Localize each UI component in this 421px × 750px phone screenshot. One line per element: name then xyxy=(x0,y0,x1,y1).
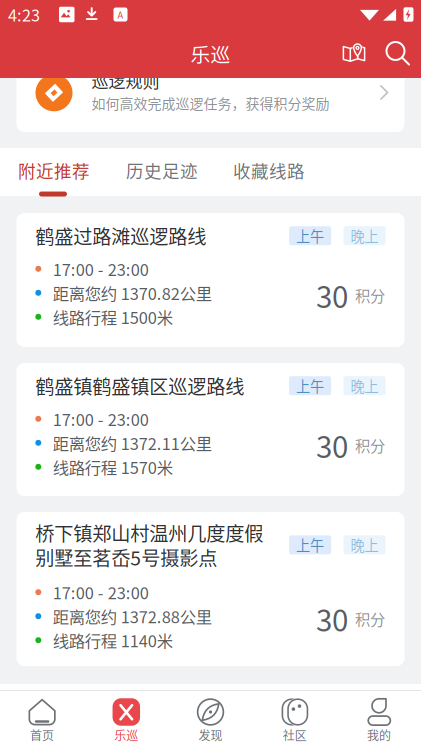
staticText: 4:23 xyxy=(8,3,40,26)
staticText: 巡逻规则 xyxy=(91,68,159,93)
button[interactable]: 收藏线路 xyxy=(233,157,305,183)
staticText: 晚上 xyxy=(350,375,378,396)
staticText: 线路行程 1140米 xyxy=(53,628,173,652)
button[interactable]: 鹤盛镇鹤盛镇区巡逻路线 xyxy=(16,363,404,496)
staticText: 距离您约 1372.11公里 xyxy=(53,431,212,455)
staticText: 距离您约 1370.82公里 xyxy=(53,281,212,305)
staticText: 上午 xyxy=(296,535,324,555)
staticText: 我的 xyxy=(367,726,391,744)
staticText: 线路行程 1500米 xyxy=(53,305,173,329)
staticText: 社区 xyxy=(283,726,307,744)
staticText: 17:00 - 23:00 xyxy=(53,257,149,281)
staticText: 桥下镇郑山村温州几度度假 xyxy=(35,519,263,547)
staticText: 30 xyxy=(316,424,348,466)
button[interactable]: 历史足迹 xyxy=(126,157,198,183)
staticText: A xyxy=(117,8,123,21)
button[interactable]: 发现 xyxy=(168,690,253,750)
staticText: 附近推荐 xyxy=(18,157,90,183)
staticText: 晚上 xyxy=(350,225,378,246)
staticText: 距离您约 1372.88公里 xyxy=(53,604,212,628)
staticText: 晚上 xyxy=(350,535,378,555)
staticText: 乐巡 xyxy=(114,726,138,744)
staticText: 乐巡 xyxy=(190,39,230,68)
staticText: 别墅至茗岙5号摄影点 xyxy=(35,543,217,571)
staticText: 鹤盛镇鹤盛镇区巡逻路线 xyxy=(35,372,244,400)
staticText: 发现 xyxy=(198,726,222,744)
staticText: 30 xyxy=(316,597,348,640)
staticText: 收藏线路 xyxy=(233,157,305,183)
staticText: 鹤盛过路滩巡逻路线 xyxy=(35,222,206,250)
button[interactable]: 首页 xyxy=(0,690,84,750)
button[interactable]: 巡逻规则 xyxy=(16,46,404,132)
button[interactable]: 附近推荐 xyxy=(18,157,90,183)
staticText: 首页 xyxy=(30,726,54,744)
staticText: 积分 xyxy=(355,434,385,456)
staticText: 历史足迹 xyxy=(126,157,198,183)
staticText: 上午 xyxy=(296,225,324,246)
staticText: 线路行程 1570米 xyxy=(53,455,173,479)
staticText: 17:00 - 23:00 xyxy=(53,580,149,604)
staticText: 如何高效完成巡逻任务，获得积分奖励 xyxy=(91,93,329,113)
button[interactable]: 社区 xyxy=(253,690,337,750)
staticText: 30 xyxy=(316,274,348,316)
button[interactable]: 桥下镇郑山村温州几度度假 xyxy=(16,512,404,666)
button[interactable]: 地图 xyxy=(333,29,375,78)
button[interactable]: 搜索 xyxy=(377,29,419,78)
button[interactable]: 乐巡 xyxy=(84,690,168,750)
staticText: 上午 xyxy=(296,375,324,396)
button[interactable]: 鹤盛过路滩巡逻路线 xyxy=(16,213,404,347)
staticText: 17:00 - 23:00 xyxy=(53,407,149,431)
staticText: 积分 xyxy=(355,284,385,306)
staticText: 积分 xyxy=(355,607,385,630)
button[interactable]: 我的 xyxy=(337,690,421,750)
